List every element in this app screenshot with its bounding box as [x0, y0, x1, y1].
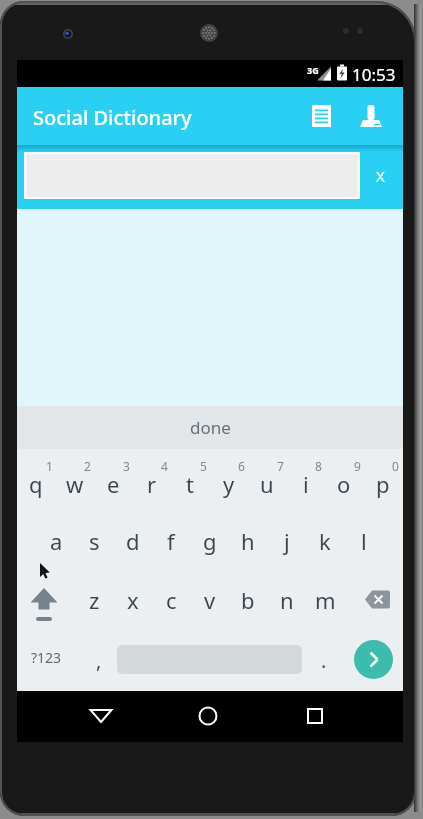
staticText: 4 — [161, 458, 168, 474]
button[interactable]: d — [114, 519, 152, 563]
staticText: m — [315, 585, 336, 615]
button[interactable]: n — [268, 578, 306, 622]
button[interactable]: p — [364, 462, 402, 506]
staticText: f — [167, 526, 175, 556]
staticText: 2 — [84, 458, 91, 474]
button[interactable] — [24, 152, 360, 199]
button[interactable]: done — [17, 406, 403, 449]
button[interactable] — [353, 100, 393, 134]
button[interactable] — [357, 580, 397, 620]
staticText: z — [89, 585, 100, 615]
staticText: w — [66, 469, 84, 499]
button[interactable]: z — [75, 578, 113, 622]
staticText: n — [280, 585, 294, 615]
staticText: a — [50, 526, 63, 556]
staticText: 5 — [200, 458, 207, 474]
button[interactable]: k — [306, 519, 344, 563]
button[interactable] — [22, 578, 66, 626]
button[interactable]: g — [191, 519, 229, 563]
button[interactable] — [295, 696, 335, 736]
staticText: Social Dictionary — [33, 104, 192, 131]
staticText: k — [319, 526, 331, 556]
staticText: p — [376, 469, 390, 499]
staticText: 0 — [392, 458, 399, 474]
staticText: , — [96, 647, 102, 674]
staticText: v — [204, 585, 216, 615]
button[interactable]: y — [210, 462, 248, 506]
button[interactable]: v — [191, 578, 229, 622]
staticText: ?123 — [31, 648, 62, 667]
button[interactable]: t — [171, 462, 209, 506]
button[interactable]: i — [287, 462, 325, 506]
staticText: 1 — [46, 458, 53, 474]
button[interactable]: m — [306, 578, 344, 622]
staticText: done — [190, 416, 231, 439]
button[interactable]: q — [17, 462, 55, 506]
staticText: 3G — [307, 64, 319, 76]
staticText: l — [361, 526, 367, 556]
staticText: 7 — [277, 458, 284, 474]
button[interactable]: . — [309, 640, 339, 680]
staticText: s — [89, 526, 100, 556]
button[interactable]: l — [345, 519, 383, 563]
staticText: 9 — [354, 458, 361, 474]
staticText: . — [321, 647, 327, 674]
staticText: h — [241, 526, 255, 556]
button[interactable]: w — [56, 462, 94, 506]
button[interactable]: a — [37, 519, 75, 563]
button[interactable]: x — [114, 578, 152, 622]
staticText: X — [376, 166, 385, 186]
button[interactable]: b — [229, 578, 267, 622]
staticText: c — [166, 585, 177, 615]
staticText: o — [337, 469, 351, 499]
staticText: 8 — [315, 458, 322, 474]
button[interactable]: h — [229, 519, 267, 563]
staticText: r — [147, 469, 157, 499]
button[interactable]: c — [152, 578, 190, 622]
button[interactable]: r — [133, 462, 171, 506]
staticText: y — [223, 469, 235, 499]
button[interactable]: u — [248, 462, 286, 506]
staticText: u — [260, 469, 274, 499]
button[interactable]: ?123 — [21, 637, 71, 677]
staticText: g — [203, 526, 217, 556]
staticText: d — [126, 526, 140, 556]
button[interactable]: f — [152, 519, 190, 563]
button[interactable] — [188, 696, 228, 736]
staticText: t — [186, 469, 194, 499]
staticText: j — [284, 526, 290, 556]
staticText: e — [107, 469, 120, 499]
staticText: 10:53 — [352, 63, 396, 86]
staticText: 3 — [123, 458, 130, 474]
button[interactable]: o — [325, 462, 363, 506]
staticText: b — [241, 585, 255, 615]
button[interactable] — [354, 640, 393, 679]
button[interactable]: e — [94, 462, 132, 506]
button[interactable] — [305, 100, 339, 134]
button[interactable]: Social Dictionary — [33, 103, 223, 131]
staticText: x — [127, 585, 139, 615]
button[interactable]: X — [359, 152, 402, 199]
staticText: q — [29, 469, 43, 499]
button[interactable]: j — [268, 519, 306, 563]
button[interactable]: s — [75, 519, 113, 563]
button[interactable]: , — [84, 640, 114, 680]
button[interactable] — [81, 696, 121, 736]
staticText: 6 — [238, 458, 245, 474]
staticText: i — [303, 469, 309, 499]
